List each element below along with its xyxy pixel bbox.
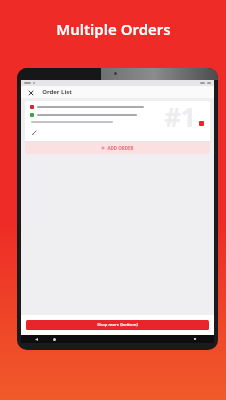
button[interactable]: ADD ORDER <box>25 142 210 154</box>
button[interactable]: Close <box>26 88 35 97</box>
button[interactable]: Delete order <box>199 121 204 126</box>
button[interactable]: Edit order <box>30 128 39 137</box>
staticText: Shop more (bottom) <box>97 322 138 328</box>
staticText: ADD ORDER <box>107 145 134 151</box>
button[interactable]: Shop more (bottom) <box>26 320 209 330</box>
button[interactable]: Back <box>34 337 38 341</box>
staticText: #1 <box>164 101 196 134</box>
staticText: Multiple Orders <box>56 19 171 39</box>
button[interactable]: Home <box>52 337 56 341</box>
button[interactable]: Recent apps <box>193 337 197 341</box>
staticText: Order List <box>42 88 72 96</box>
